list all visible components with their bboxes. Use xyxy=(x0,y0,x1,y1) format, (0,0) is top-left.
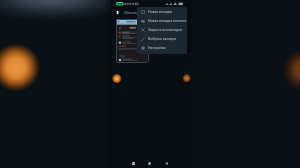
staticText: Обычные xyxy=(124,10,140,14)
button[interactable]: Выбрать вкладки xyxy=(137,34,187,43)
staticText: Закрыть все вкладки xyxy=(148,27,182,32)
staticText: Настройки xyxy=(148,45,166,50)
staticText: Новая вкладка инкогнито xyxy=(148,18,187,23)
staticText: Выбрать вкладки xyxy=(148,36,177,41)
button[interactable]: Закрыть все вкладки xyxy=(137,25,187,34)
button[interactable]: Back xyxy=(165,162,168,165)
button[interactable] xyxy=(116,19,149,63)
button[interactable]: Home xyxy=(148,162,151,165)
staticText: Новая вкладка xyxy=(148,9,173,14)
button[interactable]: Новая вкладка xyxy=(137,7,187,16)
button[interactable]: Настройки xyxy=(137,43,187,52)
button[interactable]: Обычные xyxy=(116,9,152,15)
button[interactable]: Новая вкладка инкогнито xyxy=(137,16,187,25)
